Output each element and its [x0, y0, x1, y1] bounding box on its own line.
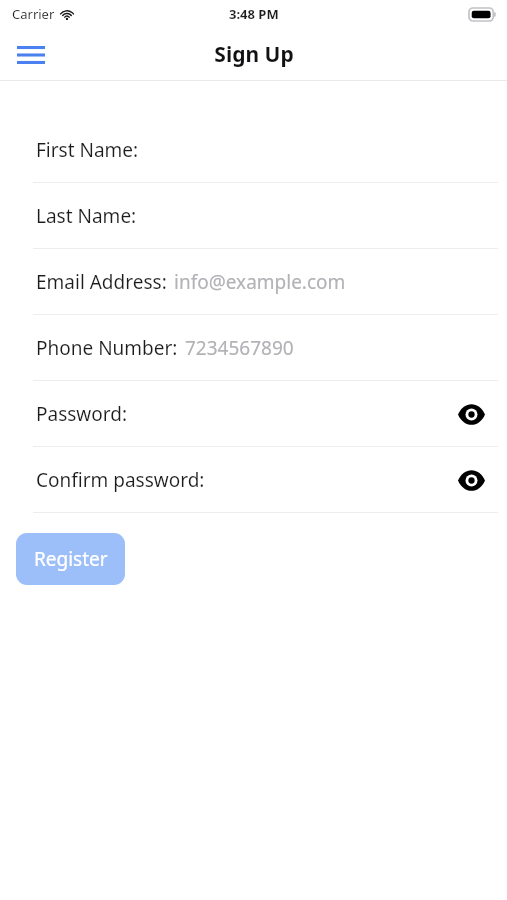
button[interactable]: Email Address:: [0, 249, 507, 314]
staticText: 7234567890: [185, 335, 294, 361]
staticText: Email Address:: [36, 269, 167, 295]
button[interactable]: First Name:: [0, 117, 507, 182]
button[interactable]: Confirm password:: [0, 447, 507, 512]
staticText: info@example.com: [174, 269, 346, 295]
button[interactable]: Password:: [0, 381, 507, 446]
button[interactable]: Register: [16, 533, 125, 585]
staticText: Sign Up: [214, 40, 294, 69]
staticText: Password:: [36, 401, 128, 427]
button[interactable]: Show password: [450, 463, 492, 497]
staticText: Carrier: [12, 5, 55, 23]
staticText: Last Name:: [36, 203, 137, 229]
staticText: Register: [34, 546, 108, 572]
staticText: 3:48 PM: [229, 5, 279, 23]
button[interactable]: Show password: [450, 397, 492, 431]
button[interactable]: Last Name:: [0, 183, 507, 248]
staticText: Phone Number:: [36, 335, 178, 361]
staticText: Confirm password:: [36, 467, 205, 493]
button[interactable]: Menu: [9, 37, 53, 73]
button[interactable]: Phone Number:: [0, 315, 507, 380]
staticText: First Name:: [36, 137, 139, 163]
